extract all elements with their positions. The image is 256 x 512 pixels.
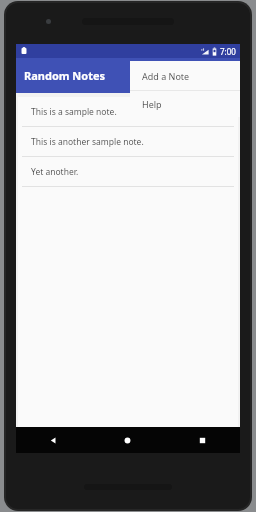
staticText: Add a Note: [142, 70, 190, 82]
button[interactable]: Yet another.: [18, 157, 238, 187]
button[interactable]: Add a Note: [130, 61, 240, 90]
button[interactable]: Help: [130, 91, 240, 117]
button[interactable]: This is a sample note.: [18, 97, 238, 127]
staticText: Yet another.: [31, 166, 79, 178]
staticText: Help: [142, 98, 162, 110]
staticText: Random Notes: [24, 68, 106, 83]
staticText: This is another sample note.: [31, 136, 144, 148]
button[interactable]: Home: [90, 427, 165, 453]
staticText: 7:00: [220, 46, 236, 57]
staticText: This is a sample note.: [31, 106, 117, 118]
button[interactable]: Recent apps: [165, 427, 240, 453]
button[interactable]: Back: [16, 427, 90, 453]
button[interactable]: This is another sample note.: [18, 127, 238, 157]
